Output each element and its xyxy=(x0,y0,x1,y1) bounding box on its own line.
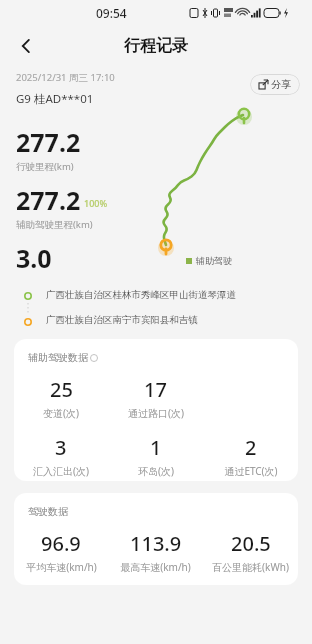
button[interactable]: 辅助驾驶数据 xyxy=(14,339,298,481)
staticText: 113.9 xyxy=(130,530,182,557)
staticText: G9 桂AD***01 xyxy=(16,91,94,107)
staticText: 09:54 xyxy=(96,5,127,21)
staticText: 分享 xyxy=(271,78,291,91)
staticText: 100% xyxy=(84,197,108,209)
staticText: 277.2 xyxy=(16,125,81,159)
staticText: 96.9 xyxy=(41,530,81,557)
button[interactable]: 分享 xyxy=(250,74,300,95)
staticText: 驾驶数据 xyxy=(28,505,68,518)
staticText: 1 xyxy=(150,434,162,461)
staticText: 17 xyxy=(144,376,167,403)
staticText: 2025/12/31 周三 17:10 xyxy=(16,71,115,84)
staticText: 广西壮族自治区桂林市秀峰区甲山街道琴潭道 xyxy=(46,289,236,301)
staticText: 25 xyxy=(50,376,73,403)
staticText: 百公里能耗(kWh) xyxy=(212,560,289,574)
staticText: 最高车速(km/h) xyxy=(120,560,191,574)
button[interactable]: 驾驶数据 xyxy=(14,493,298,585)
staticText: 辅助驾驶里程(km) xyxy=(16,218,93,231)
staticText: 环岛(次) xyxy=(138,464,174,478)
staticText: 平均车速(km/h) xyxy=(26,560,97,574)
staticText: 行程记录 xyxy=(124,36,188,56)
staticText: 2 xyxy=(245,434,257,461)
button[interactable]: Back xyxy=(6,26,46,66)
staticText: 20.5 xyxy=(231,530,271,557)
staticText: 3 xyxy=(55,434,67,461)
staticText: 汇入汇出(次) xyxy=(33,464,89,478)
staticText: 变道(次) xyxy=(43,406,79,420)
staticText: 辅助驾驶数据 xyxy=(28,351,88,364)
staticText: 3.0 xyxy=(16,241,52,275)
staticText: 通过ETC(次) xyxy=(224,464,278,478)
staticText: 广西壮族自治区南宁市宾阳县和吉镇 xyxy=(46,314,198,326)
staticText: 通过路口(次) xyxy=(128,406,184,420)
staticText: 277.2 xyxy=(16,183,81,217)
staticText: 辅助驾驶 xyxy=(196,255,232,266)
staticText: 行驶里程(km) xyxy=(16,160,74,173)
